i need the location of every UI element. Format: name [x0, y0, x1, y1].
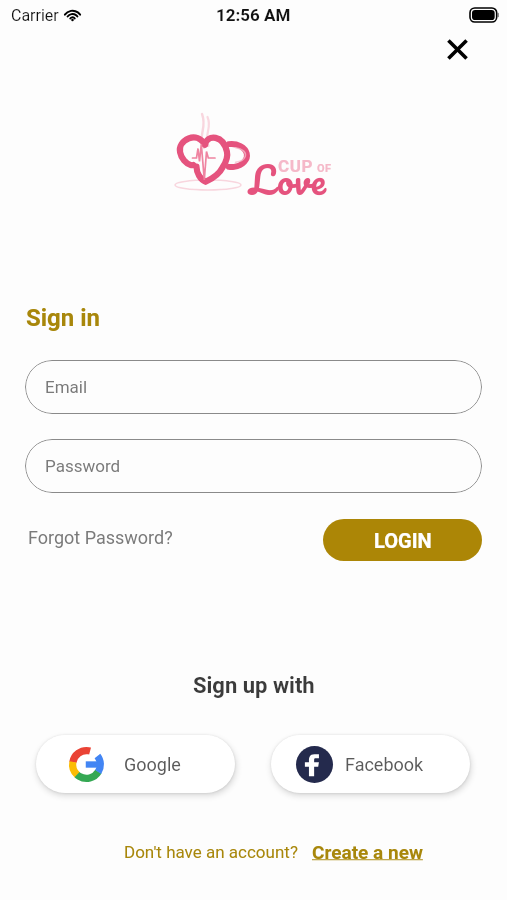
staticText: Sign in — [26, 304, 101, 332]
button[interactable]: LOGIN — [323, 519, 482, 561]
staticText: Love — [249, 147, 326, 212]
button[interactable]: Email — [25, 360, 482, 414]
button[interactable]: Password — [25, 439, 482, 493]
staticText: Password — [45, 456, 121, 476]
staticText: LOGIN — [374, 529, 432, 552]
button[interactable]: Create a new — [312, 841, 423, 863]
staticText: Google — [124, 754, 181, 775]
staticText: OF — [317, 162, 332, 175]
staticText: Facebook — [345, 754, 424, 775]
staticText: Email — [45, 377, 88, 397]
staticText: 12:56 AM — [216, 5, 291, 25]
button[interactable]: Google — [36, 735, 235, 793]
button[interactable]: Forgot Password? — [28, 527, 173, 548]
staticText: Carrier — [11, 6, 59, 25]
button[interactable]: Facebook — [271, 735, 470, 793]
staticText: CUP — [278, 156, 314, 176]
staticText: Don't have an account? — [124, 842, 298, 862]
button[interactable]: Close — [436, 28, 479, 71]
staticText: Sign up with — [193, 673, 315, 699]
